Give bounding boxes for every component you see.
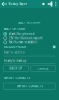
button[interactable]: CANCEL xyxy=(31,65,55,72)
staticText: vCard (for phones) xyxy=(8,32,34,36)
staticText: IMPORT CONTACTS xyxy=(16,84,42,88)
staticText: IMPORT CONTACTS xyxy=(3,76,29,80)
staticText: CSV (for Outlook import) xyxy=(8,36,42,40)
staticText: CANCEL xyxy=(38,67,48,70)
staticText: INCLUDE PHOTOS xyxy=(3,45,25,49)
button[interactable]: Share xyxy=(46,1,54,7)
button[interactable]: vCard (for phones) xyxy=(0,32,59,36)
button[interactable]: More options xyxy=(54,1,59,7)
staticText: Email to address xyxy=(3,51,24,54)
button[interactable]: SELECT ACCOUNT xyxy=(0,20,59,25)
staticText: SELECT OPTIONS xyxy=(3,27,24,31)
staticText: BACK UP xyxy=(9,67,22,70)
staticText: Ready to back up xyxy=(3,59,26,62)
button[interactable]: Text (human readable) xyxy=(0,40,59,44)
button[interactable]: BACK UP xyxy=(3,65,28,72)
staticText: Text (human readable) xyxy=(8,40,37,44)
staticText: Backup Export xyxy=(8,2,27,6)
button[interactable]: INCLUDE PHOTOS xyxy=(0,45,59,49)
button[interactable]: Email to address xyxy=(0,50,59,54)
button[interactable]: Account xyxy=(40,1,46,7)
staticText: SELECT ACCOUNT xyxy=(18,21,41,24)
button[interactable]: CSV (for Outlook import) xyxy=(0,36,59,40)
button[interactable]: Back xyxy=(0,1,8,7)
button[interactable]: IMPORT CONTACTS xyxy=(3,83,55,90)
